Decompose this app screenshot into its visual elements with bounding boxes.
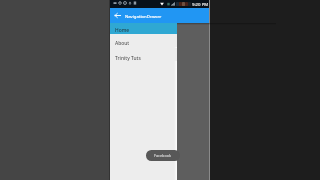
staticText: NavigationDrawer (125, 13, 162, 19)
staticText: Facebook (154, 153, 172, 158)
staticText: About (115, 40, 130, 47)
button[interactable]: Home (110, 22, 177, 34)
staticText: Trinity Tuts (115, 55, 141, 62)
button[interactable]: Trinity Tuts (110, 48, 177, 61)
button[interactable]: Close navigation drawer (110, 8, 125, 23)
button[interactable]: About (110, 34, 177, 47)
staticText: Home (115, 27, 130, 34)
staticText: 9:20 PM (192, 1, 209, 7)
